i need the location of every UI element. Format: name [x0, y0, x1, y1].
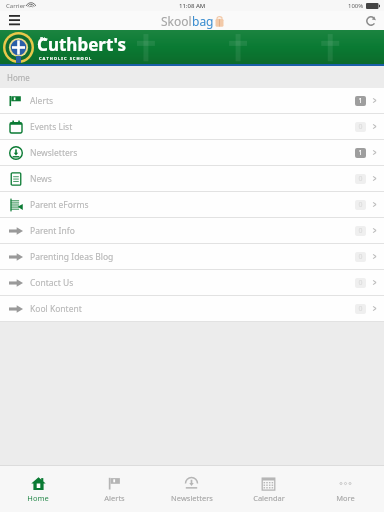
staticText: bag	[192, 13, 214, 29]
staticText: Alerts	[104, 493, 125, 503]
staticText: 0	[358, 174, 363, 184]
staticText: 1	[358, 96, 363, 106]
button[interactable]: News	[0, 166, 384, 191]
staticText: Parenting Ideas Blog	[30, 251, 355, 263]
staticText: 0	[358, 252, 363, 262]
staticText: 100%	[348, 2, 364, 10]
button[interactable]: Kool Kontent	[0, 296, 384, 321]
button[interactable]: Newsletters	[0, 140, 384, 165]
staticText: Alerts	[30, 95, 355, 107]
button[interactable]: Newsletters	[153, 466, 230, 512]
button[interactable]: Parent eForms	[0, 192, 384, 217]
button[interactable]: Parent Info	[0, 218, 384, 243]
staticText: 11:08 AM	[179, 2, 206, 10]
staticText: Parent Info	[30, 225, 355, 237]
button[interactable]: Parenting Ideas Blog	[0, 244, 384, 269]
staticText: 0	[358, 200, 363, 210]
button[interactable]: Menu	[4, 11, 24, 30]
staticText: Cuthbert's	[37, 33, 127, 56]
button[interactable]: Home	[0, 466, 76, 512]
button[interactable]: Calendar	[230, 466, 307, 512]
staticText: Newsletters	[30, 147, 355, 159]
staticText: News	[30, 173, 355, 185]
staticText: Parent eForms	[30, 199, 355, 211]
button[interactable]: Contact Us	[0, 270, 384, 295]
staticText: 0	[358, 122, 363, 132]
staticText: C A T H O L I C S C H O O L	[39, 56, 92, 61]
staticText: Kool Kontent	[30, 303, 355, 315]
staticText: Contact Us	[30, 277, 355, 289]
staticText: Skool	[161, 13, 192, 29]
staticText: 0	[358, 278, 363, 288]
staticText: Carrier	[6, 2, 26, 10]
staticText: More	[336, 493, 355, 503]
staticText: Home	[27, 493, 49, 503]
staticText: St	[40, 35, 46, 43]
button[interactable]: Refresh	[362, 12, 380, 30]
staticText: Events List	[30, 121, 355, 133]
button[interactable]: More	[307, 466, 384, 512]
staticText: 0	[358, 304, 363, 314]
button[interactable]: Events List	[0, 114, 384, 139]
staticText: 0	[358, 226, 363, 236]
staticText: Calendar	[253, 493, 285, 503]
button[interactable]: Alerts	[0, 88, 384, 113]
staticText: 1	[358, 148, 363, 158]
staticText: Newsletters	[171, 493, 213, 503]
staticText: Home	[7, 72, 30, 83]
button[interactable]: Alerts	[76, 466, 153, 512]
